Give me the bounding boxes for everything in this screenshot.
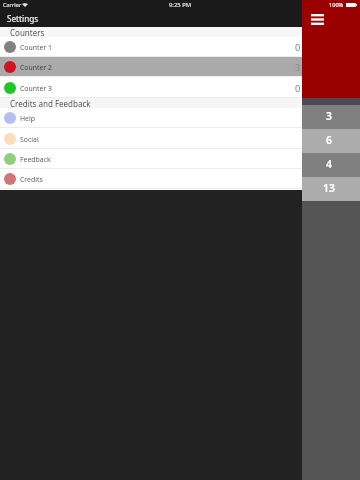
staticText: 3 — [295, 61, 301, 74]
button[interactable]: Open navigation menu — [311, 14, 324, 25]
staticText: Settings — [7, 13, 39, 24]
button[interactable]: 6 — [302, 129, 360, 153]
staticText: 0 — [295, 82, 301, 95]
button[interactable]: Help — [0, 108, 302, 128]
button[interactable]: 3 — [302, 105, 360, 129]
staticText: 6 — [326, 133, 332, 147]
staticText: 3 — [326, 109, 332, 123]
staticText: Counter 2 — [20, 63, 52, 72]
button[interactable]: Social — [0, 129, 302, 149]
button[interactable]: 4 — [302, 153, 360, 177]
staticText: Counter 1 — [20, 43, 52, 52]
staticText: Carrier — [3, 1, 22, 9]
staticText: 9:25 PM — [169, 1, 192, 9]
button[interactable]: Feedback — [0, 149, 302, 169]
staticText: Credits — [20, 175, 43, 184]
staticText: Counters — [10, 27, 45, 37]
button[interactable]: Credits — [0, 169, 302, 189]
button[interactable]: Counter 2 — [0, 57, 302, 77]
staticText: 0 — [295, 41, 301, 54]
button[interactable]: Counter 1 — [0, 37, 302, 57]
staticText: 4 — [326, 157, 332, 171]
staticText: Counter 3 — [20, 84, 52, 93]
staticText: Credits and Feedback — [10, 98, 91, 108]
staticText: 100% — [329, 1, 344, 9]
button[interactable]: 13 — [302, 177, 360, 201]
staticText: Social — [20, 135, 39, 144]
button[interactable]: Counter 3 — [0, 78, 302, 98]
staticText: Help — [20, 114, 36, 123]
staticText: 13 — [323, 181, 335, 195]
staticText: Feedback — [20, 155, 51, 164]
